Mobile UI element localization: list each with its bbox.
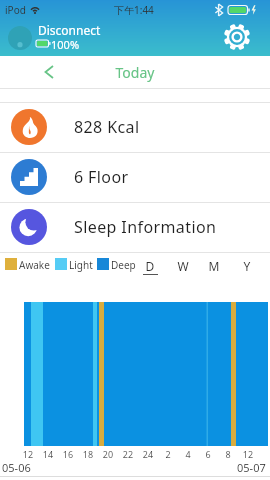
staticText: 下午1:44 xyxy=(114,3,154,17)
staticText: 20 xyxy=(98,448,118,460)
staticText: iPod xyxy=(5,3,26,17)
staticText: 14 xyxy=(38,448,58,460)
button[interactable]: Y xyxy=(238,255,256,277)
staticText: 6 Floor xyxy=(74,166,129,188)
staticText: Disconnect xyxy=(38,22,101,38)
staticText: 16 xyxy=(58,448,78,460)
staticText: Sleep Information xyxy=(74,216,217,238)
staticText: 05-07 xyxy=(237,460,266,475)
staticText: 8 xyxy=(218,448,238,460)
button[interactable] xyxy=(221,21,253,53)
staticText: W xyxy=(174,258,192,274)
button[interactable]: 6 Floor xyxy=(0,152,270,202)
staticText: 4 xyxy=(178,448,198,460)
staticText: Today xyxy=(95,63,175,82)
staticText: 12 xyxy=(238,448,258,460)
staticText: 12 xyxy=(18,448,38,460)
button[interactable] xyxy=(34,58,62,86)
staticText: Light xyxy=(69,258,93,272)
staticText: 2 xyxy=(158,448,178,460)
staticText: 24 xyxy=(138,448,158,460)
button[interactable]: Sleep Information xyxy=(0,202,270,252)
staticText: 6 xyxy=(198,448,218,460)
button[interactable]: D xyxy=(141,255,159,277)
staticText: 100% xyxy=(51,37,80,52)
staticText: Deep xyxy=(111,258,136,272)
staticText: Y xyxy=(238,258,256,274)
staticText: D xyxy=(141,258,159,274)
staticText: M xyxy=(205,258,223,274)
staticText: 05-06 xyxy=(2,460,31,475)
staticText: Awake xyxy=(19,258,50,272)
staticText: 22 xyxy=(118,448,138,460)
button[interactable]: M xyxy=(205,255,223,277)
staticText: 18 xyxy=(78,448,98,460)
button[interactable]: W xyxy=(174,255,192,277)
button[interactable] xyxy=(8,26,32,50)
button[interactable]: 828 Kcal xyxy=(0,102,270,152)
staticText: 828 Kcal xyxy=(74,116,140,138)
